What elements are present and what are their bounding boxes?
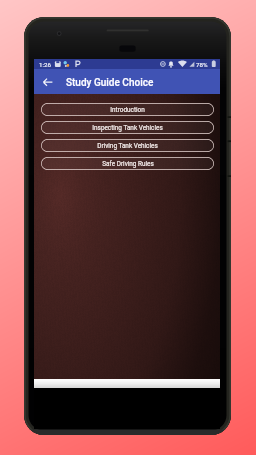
staticText: Introduction bbox=[110, 106, 145, 114]
button[interactable]: Safe Driving Rules bbox=[41, 157, 214, 170]
staticText: 78% bbox=[196, 61, 208, 68]
staticText: Driving Tank Vehicles bbox=[97, 142, 158, 150]
button[interactable]: Navigate up bbox=[39, 73, 57, 91]
staticText: Inspecting Tank Vehicles bbox=[92, 124, 163, 132]
button[interactable]: Driving Tank Vehicles bbox=[41, 139, 214, 152]
staticText: Safe Driving Rules bbox=[102, 160, 154, 168]
button[interactable]: Introduction bbox=[41, 103, 214, 116]
button[interactable]: Inspecting Tank Vehicles bbox=[41, 121, 214, 134]
staticText: 1:26 bbox=[39, 61, 51, 68]
staticText: Study Guide Choice bbox=[66, 77, 154, 89]
